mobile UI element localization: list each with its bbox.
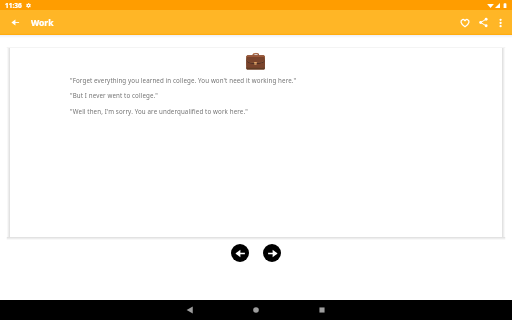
button[interactable]: Recent apps — [312, 300, 332, 320]
staticText: "But I never went to college." — [70, 91, 158, 99]
staticText: Work — [31, 17, 54, 29]
button[interactable]: Previous — [231, 244, 249, 262]
button[interactable]: Back — [0, 10, 30, 35]
staticText: 💼 — [245, 50, 267, 70]
button[interactable]: Home — [246, 300, 266, 320]
button[interactable]: Next — [263, 244, 281, 262]
button[interactable]: Share — [470, 10, 489, 35]
staticText: "Well then, I'm sorry. You are underqual… — [70, 107, 248, 115]
button[interactable]: Favorite — [451, 10, 470, 35]
button[interactable]: Back — [180, 300, 200, 320]
staticText: 11:36 — [5, 1, 22, 10]
button[interactable]: More options — [489, 10, 512, 35]
staticText: "Forget everything you learned in colleg… — [70, 76, 297, 84]
